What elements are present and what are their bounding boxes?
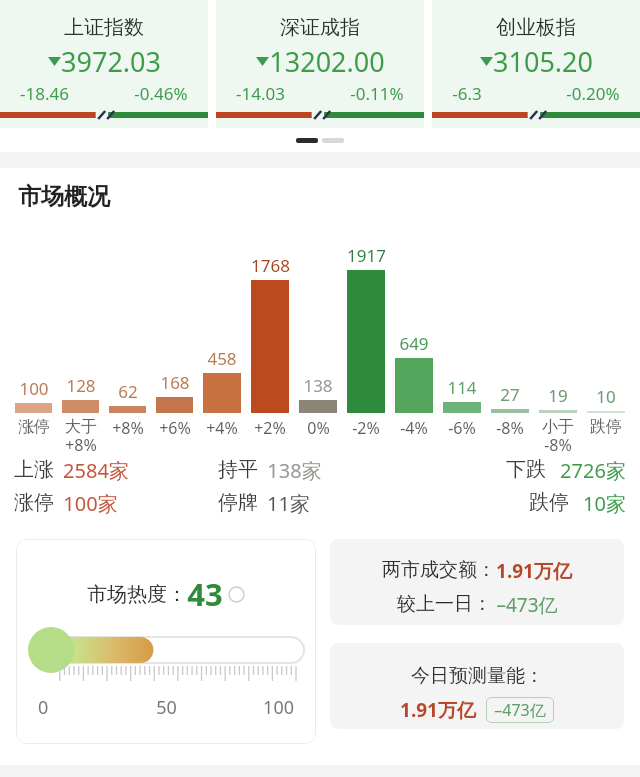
staticText: 创业板指 [496, 15, 576, 40]
staticText: 458 [207, 347, 237, 370]
staticText: -4% [400, 417, 428, 439]
staticText: 649 [399, 332, 429, 355]
button[interactable]: 上证指数 [0, 0, 208, 128]
other: 帮助 [228, 586, 245, 603]
staticText: 1768 [251, 254, 290, 277]
staticText: 0% [307, 417, 330, 439]
staticText: 114 [447, 376, 477, 399]
staticText: -6.3 [452, 82, 482, 105]
staticText: 涨停 [18, 417, 50, 437]
staticText: 两市成交额： [382, 558, 496, 582]
staticText: 跌停 [590, 417, 622, 437]
staticText: 3105.20 [493, 43, 593, 80]
staticText: 停牌 [218, 490, 258, 515]
staticText: 27 [500, 383, 520, 406]
staticText: 100 [19, 377, 49, 400]
staticText: 100 [209, 695, 294, 720]
staticText: -2% [352, 417, 380, 439]
staticText: -6% [448, 417, 476, 439]
staticText: -0.20% [566, 82, 620, 105]
staticText: 2726家 [560, 457, 626, 484]
staticText: 深证成指 [280, 15, 360, 40]
staticText: +6% [159, 417, 191, 439]
button[interactable]: 两市成交额： [330, 539, 624, 625]
staticText: +2% [254, 417, 286, 439]
staticText: 今日预测量能： [411, 664, 544, 688]
staticText: 3972.03 [61, 43, 161, 80]
staticText: 下跌 [506, 457, 546, 482]
staticText: -8% [496, 417, 524, 439]
staticText: 128 [66, 374, 96, 397]
staticText: 11家 [267, 490, 310, 517]
staticText: 较上一日： [397, 592, 492, 616]
staticText: 19 [548, 384, 568, 407]
staticText: 13202.00 [269, 43, 385, 80]
button[interactable]: 深证成指 [216, 0, 424, 128]
staticText: -14.03 [236, 82, 285, 105]
staticText: –473亿 [496, 592, 558, 618]
staticText: 138家 [267, 457, 322, 484]
staticText: 2584家 [63, 457, 129, 484]
staticText: 43 [187, 573, 223, 615]
staticText: -0.11% [350, 82, 404, 105]
staticText: 市场概况 [18, 182, 640, 211]
staticText: 10 [596, 385, 616, 408]
staticText: –473亿 [494, 699, 546, 721]
staticText: 大于 +8% [65, 417, 97, 456]
button[interactable]: 创业板指 [432, 0, 640, 128]
staticText: 100家 [63, 490, 118, 517]
staticText: 1917 [347, 244, 386, 267]
staticText: 涨停 [14, 490, 54, 515]
staticText: 市场热度： [87, 582, 187, 607]
staticText: 62 [118, 380, 138, 403]
staticText: 跌停 [529, 490, 569, 515]
staticText: 50 [124, 695, 209, 720]
staticText: +4% [206, 417, 238, 439]
staticText: 1.91万亿 [400, 697, 476, 723]
staticText: 0 [38, 695, 124, 720]
button[interactable]: 市场热度： [16, 539, 316, 744]
staticText: 138 [303, 374, 333, 397]
staticText: 小于 -8% [542, 417, 574, 456]
button[interactable]: 今日预测量能： [330, 643, 624, 729]
staticText: +8% [112, 417, 144, 439]
staticText: 持平 [218, 457, 258, 482]
staticText: -0.46% [134, 82, 188, 105]
staticText: 10家 [583, 490, 626, 517]
staticText: 上涨 [14, 457, 54, 482]
staticText: 1.91万亿 [496, 558, 572, 584]
staticText: 168 [160, 371, 190, 394]
staticText: 上证指数 [64, 15, 144, 40]
staticText: -18.46 [20, 82, 69, 105]
